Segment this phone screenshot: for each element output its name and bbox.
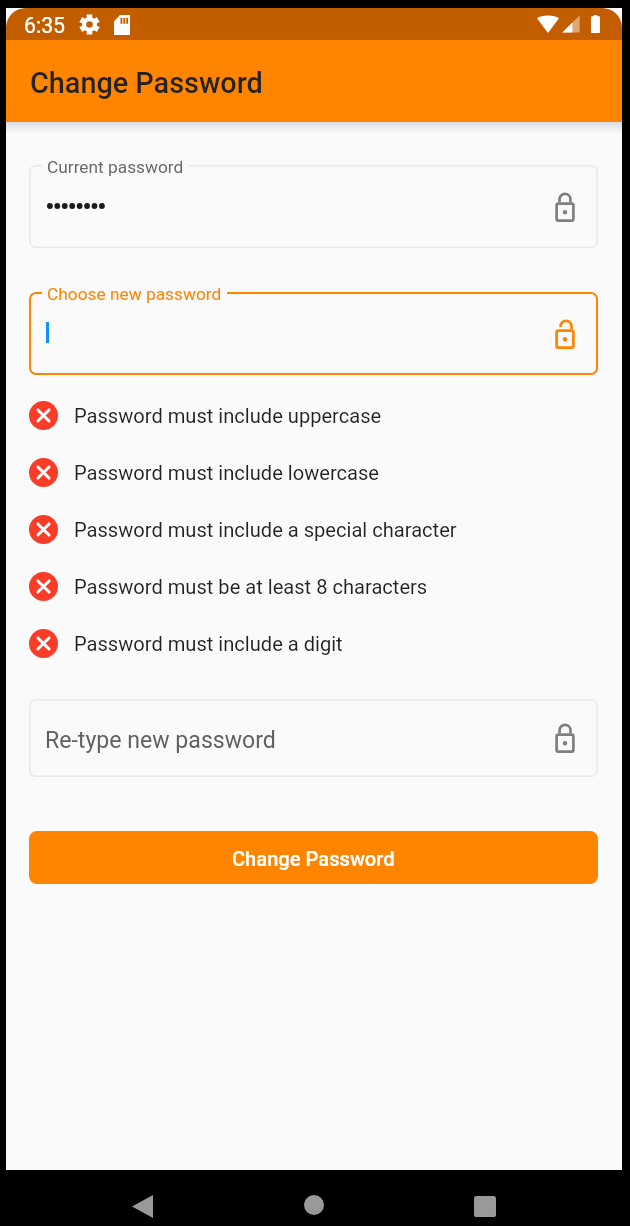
staticText: Current password: [47, 157, 184, 177]
staticText: Password must include uppercase: [74, 404, 382, 428]
staticText: Password must include lowercase: [74, 461, 379, 485]
button[interactable]: Choose new password: [29, 292, 598, 375]
button[interactable]: Change Password: [29, 831, 598, 884]
button[interactable]: Current password: [29, 165, 598, 248]
staticText: Change Password: [232, 847, 395, 871]
staticText: 6:35: [24, 13, 66, 38]
staticText: Choose new password: [47, 284, 222, 304]
staticText: Password must include a digit: [74, 632, 343, 656]
button[interactable]: Recent apps: [458, 1179, 512, 1226]
button[interactable]: Back: [115, 1179, 169, 1226]
button[interactable]: Re-type new password: [29, 699, 598, 777]
staticText: Change Password: [30, 66, 263, 100]
staticText: Password must include a special characte…: [74, 518, 457, 542]
button[interactable]: Home: [287, 1178, 341, 1226]
staticText: Password must be at least 8 characters: [74, 575, 428, 599]
staticText: Re-type new password: [45, 727, 276, 754]
